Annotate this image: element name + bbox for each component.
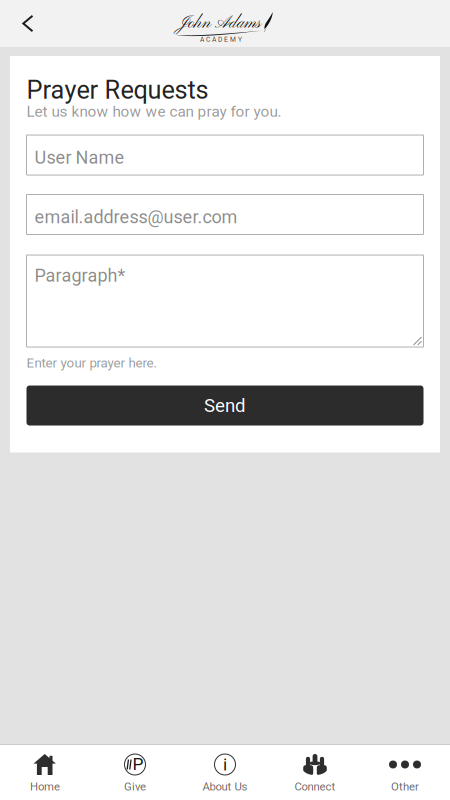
staticText: Other [391, 780, 419, 793]
staticText: About Us [202, 780, 247, 793]
button[interactable]: Connect [270, 745, 360, 800]
staticText: Connect [294, 780, 335, 793]
button[interactable]: User Name [26, 135, 423, 175]
staticText: User Name [34, 147, 124, 168]
staticText: i [223, 754, 227, 775]
staticText: Send [204, 395, 246, 416]
staticText: P [132, 754, 143, 774]
button[interactable]: i [180, 745, 270, 800]
staticText: Prayer Requests [26, 75, 208, 105]
staticText: Let us know how we can pray for you. [26, 102, 281, 120]
staticText: A C A D E M Y [200, 35, 242, 43]
button[interactable]: P [90, 745, 180, 800]
button[interactable]: email.address@user.com [26, 194, 423, 234]
staticText: Give [124, 780, 146, 793]
staticText: John Adams [178, 12, 261, 34]
staticText: email.address@user.com [34, 206, 237, 228]
button[interactable]: Back [0, 0, 56, 47]
staticText: Enter your prayer here. [26, 355, 157, 371]
staticText: Paragraph* [34, 265, 125, 286]
button[interactable]: Home [0, 745, 90, 800]
button[interactable]: Other [360, 745, 450, 800]
staticText: Home [30, 780, 60, 793]
button[interactable]: Send [26, 385, 423, 425]
button[interactable]: Paragraph* [26, 255, 423, 347]
